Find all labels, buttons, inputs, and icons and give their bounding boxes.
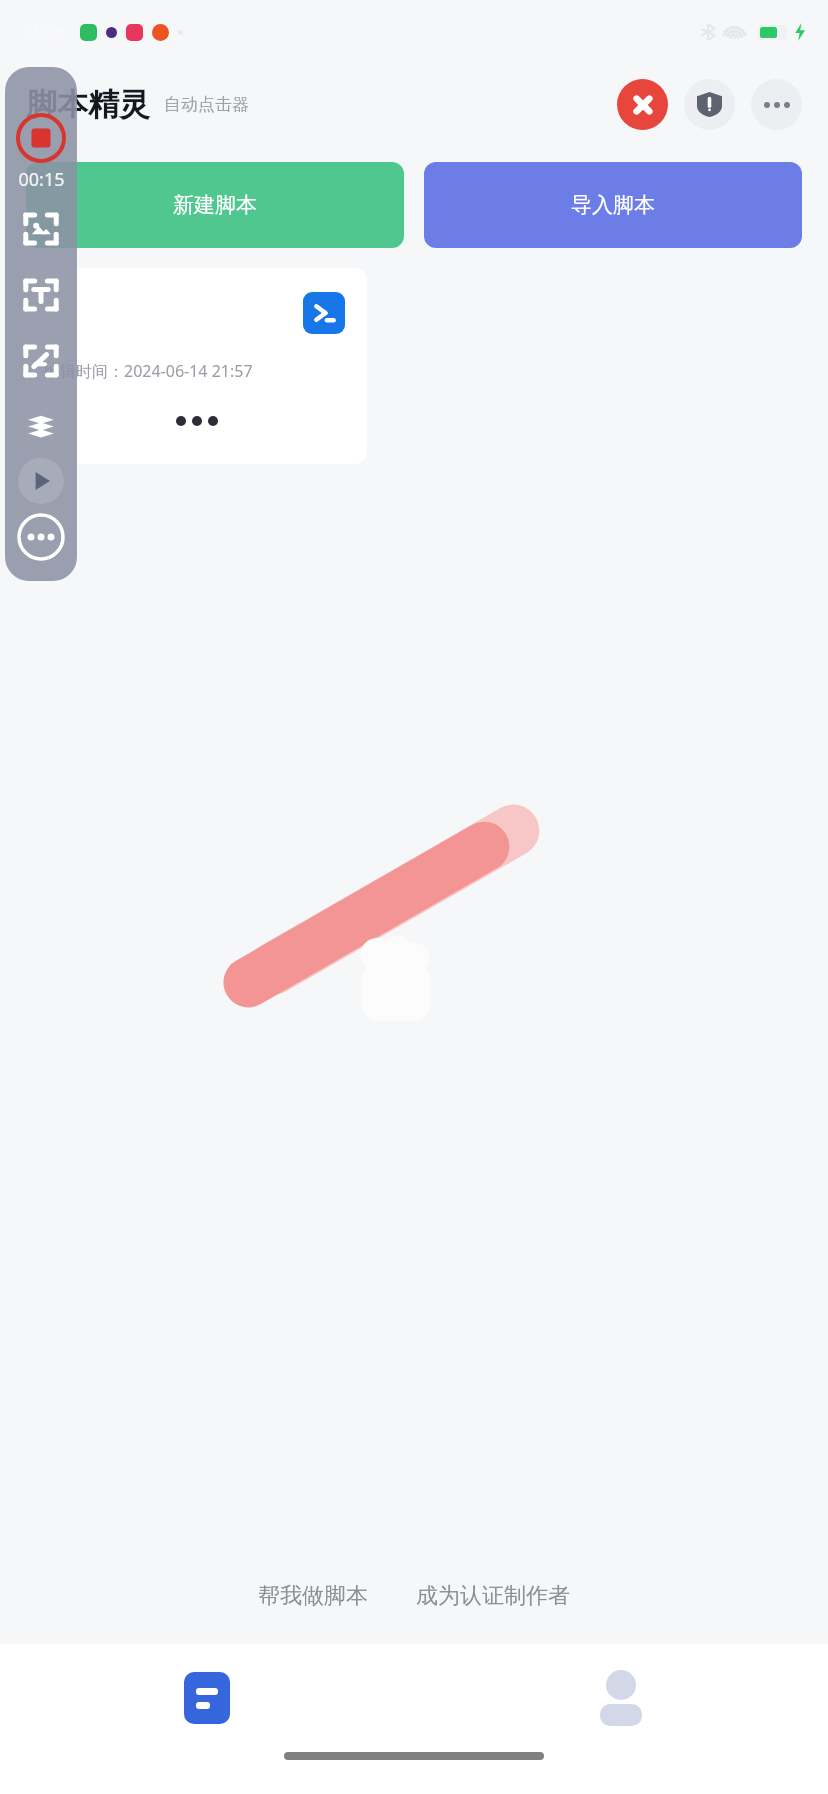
staticText: 00:15 [18,167,65,192]
button[interactable]: More options [751,79,802,130]
button[interactable]: 帮我做脚本 [248,1576,378,1616]
button[interactable]: Capture image [18,206,64,252]
staticText: 新建脚本 [173,192,257,218]
button[interactable]: 成为认证制作者 [406,1576,580,1616]
button[interactable]: Security [684,79,735,130]
button[interactable]: Edit selection [18,338,64,384]
button[interactable]: Profile [414,1644,828,1752]
staticText: 脚本精灵 [26,85,150,124]
button[interactable]: Capture text [18,272,64,318]
staticText: 导入脚本 [571,192,655,218]
staticText: 成为认证制作者 [416,1582,570,1610]
staticText: 编辑时间：2024-06-14 21:57 [44,360,253,382]
button[interactable]: Stop recording [16,113,66,163]
button[interactable]: Play [18,458,64,504]
button[interactable]: Scripts [0,1644,414,1752]
button[interactable]: More [16,512,66,562]
button[interactable]: 编辑时间：2024-06-14 21:57 [26,268,367,464]
button[interactable]: Stop [617,79,668,130]
button[interactable]: Layers [18,404,64,450]
staticText: 帮我做脚本 [258,1582,368,1610]
button[interactable]: 新建脚本 [26,162,404,248]
button[interactable]: 导入脚本 [424,162,802,248]
staticText: 自动点击器 [164,94,249,115]
